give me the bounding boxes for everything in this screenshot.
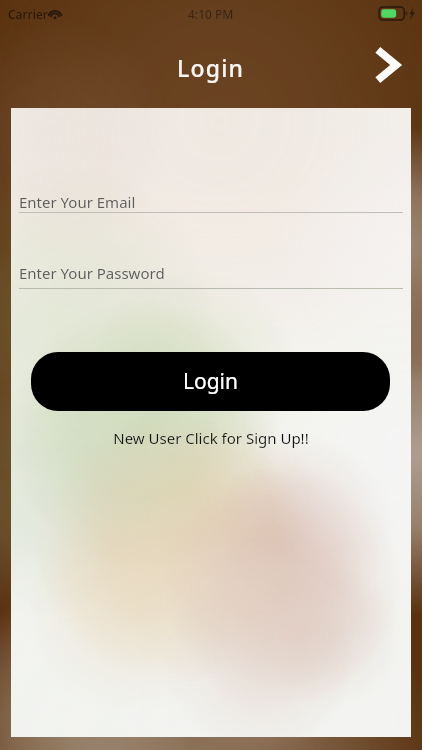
staticText: Enter Your Email [19,192,136,212]
staticText: Login [183,367,239,396]
staticText: Enter Your Password [19,263,165,283]
staticText: Login [177,52,245,83]
staticText: New User Click for Sign Up!! [113,428,309,448]
button[interactable]: Next [364,42,410,88]
staticText: Carrier [8,6,48,22]
button[interactable]: Login [31,352,390,411]
staticText: 4:10 PM [188,6,234,22]
button[interactable]: New User Click for Sign Up!! [71,425,351,451]
